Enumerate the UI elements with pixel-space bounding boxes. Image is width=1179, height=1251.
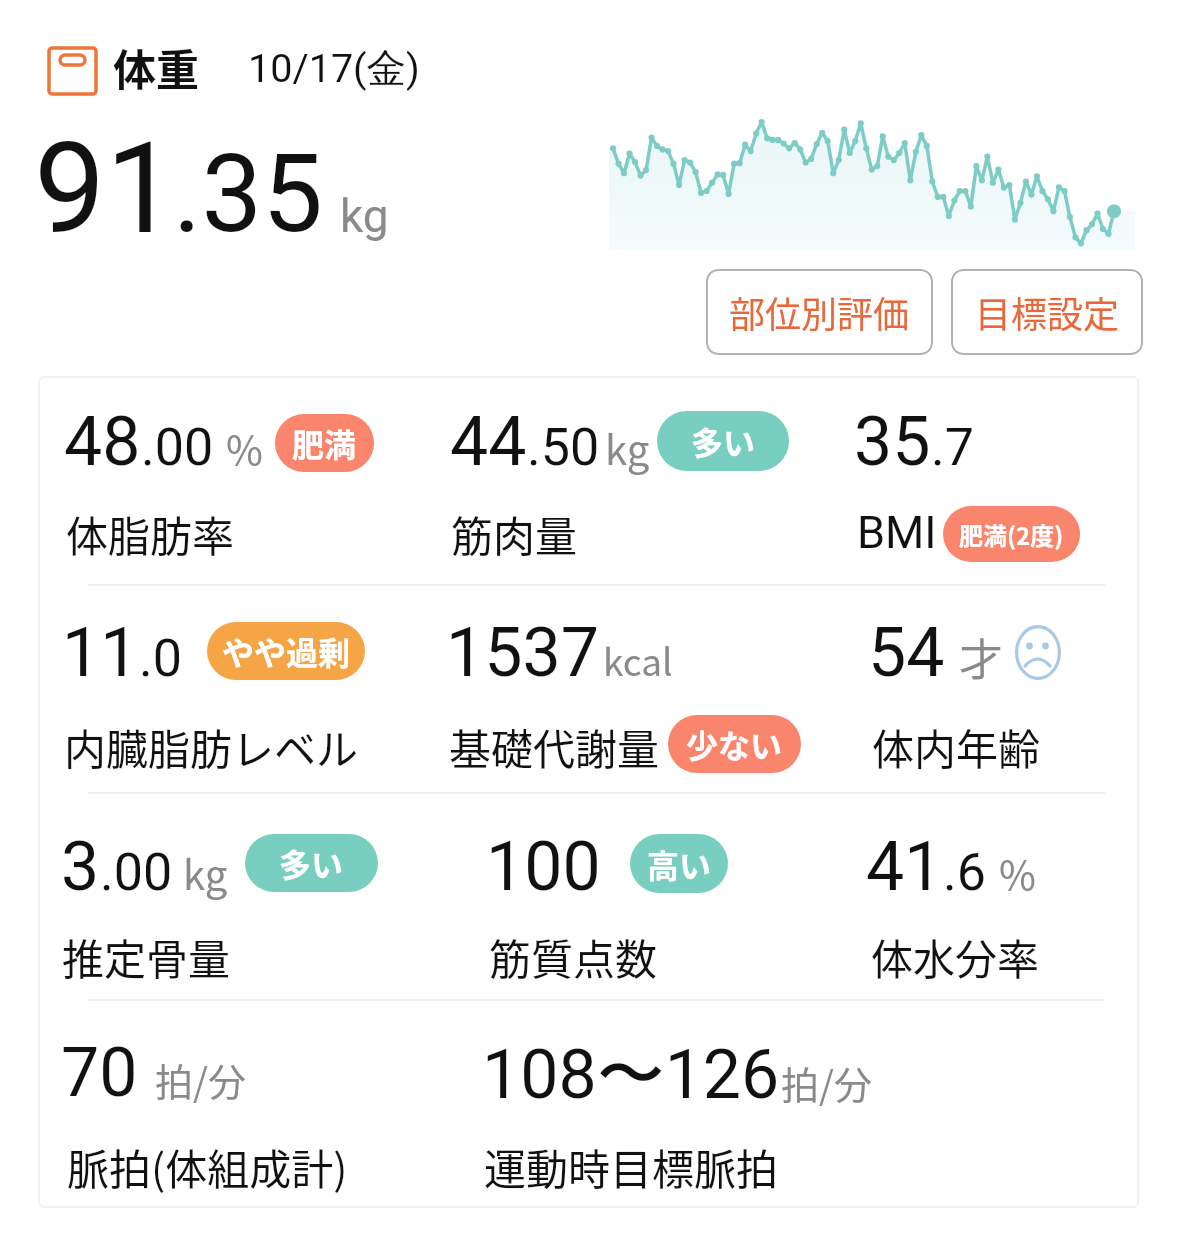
staticText: %: [999, 844, 1036, 902]
staticText: 肥満(2度): [959, 517, 1064, 552]
staticText: kg: [605, 419, 650, 477]
staticText: 35: [854, 402, 931, 482]
staticText: 体脂肪率: [66, 503, 235, 564]
staticText: 肥満: [292, 420, 357, 466]
button[interactable]: 脈拍(体組成計): [38, 999, 438, 1206]
staticText: 多い: [279, 840, 344, 886]
staticText: 48: [64, 402, 141, 482]
staticText: 運動時目標脈拍: [484, 1136, 779, 1197]
staticText: .35: [173, 131, 323, 258]
staticText: 11: [62, 613, 139, 693]
staticText: 多い: [691, 418, 756, 464]
button[interactable]: 体脂肪率: [38, 376, 438, 583]
staticText: 部位別評価: [729, 286, 910, 338]
other: Weight scale: [47, 46, 98, 96]
button[interactable]: 内臓脂肪レベル: [38, 584, 438, 791]
staticText: 少ない: [686, 721, 783, 767]
staticText: BMI: [857, 506, 937, 559]
staticText: .7: [931, 417, 974, 478]
staticText: 体水分率: [871, 926, 1040, 987]
staticText: .6: [943, 842, 986, 903]
staticText: kcal: [603, 633, 673, 687]
staticText: 体重: [113, 36, 199, 98]
staticText: 54: [868, 613, 945, 693]
staticText: 推定骨量: [62, 926, 231, 987]
staticText: 才: [959, 625, 1003, 689]
staticText: 70: [61, 1033, 138, 1113]
staticText: やや過剰: [222, 628, 351, 674]
staticText: 拍/分: [781, 1055, 872, 1110]
staticText: 筋肉量: [451, 503, 578, 564]
staticText: 拍/分: [155, 1052, 246, 1107]
staticText: 10/17(金): [248, 44, 420, 94]
button[interactable]: 運動時目標脈拍: [438, 999, 838, 1206]
staticText: 44: [450, 402, 527, 482]
staticText: 91: [34, 114, 177, 263]
staticText: 41: [866, 827, 943, 907]
staticText: 目標設定: [975, 286, 1120, 338]
staticText: .50: [527, 417, 600, 478]
staticText: %: [226, 419, 263, 477]
button[interactable]: 筋肉量: [438, 376, 838, 583]
staticText: .00: [100, 842, 173, 903]
staticText: kg: [340, 189, 389, 243]
staticText: 100: [486, 827, 601, 907]
staticText: 脈拍(体組成計): [67, 1136, 348, 1197]
button[interactable]: 部位別評価: [706, 269, 933, 355]
staticText: 基礎代謝量: [449, 716, 660, 777]
staticText: 体内年齢: [872, 716, 1041, 777]
button[interactable]: 筋質点数: [438, 792, 838, 999]
button[interactable]: 体内年齢: [838, 584, 1139, 791]
staticText: kg: [183, 844, 228, 902]
staticText: .0: [139, 628, 182, 689]
staticText: 108〜126: [482, 1033, 780, 1119]
button[interactable]: 推定骨量: [38, 792, 438, 999]
button[interactable]: BMI: [838, 376, 1139, 583]
button[interactable]: 目標設定: [951, 269, 1143, 355]
staticText: 筋質点数: [489, 926, 658, 987]
staticText: 3: [61, 827, 100, 907]
staticText: 1537: [446, 613, 599, 693]
button[interactable]: 体水分率: [838, 792, 1139, 999]
staticText: 高い: [647, 841, 712, 887]
staticText: 内臓脂肪レベル: [64, 716, 359, 777]
staticText: .00: [141, 417, 214, 478]
button[interactable]: 基礎代謝量: [438, 584, 838, 791]
